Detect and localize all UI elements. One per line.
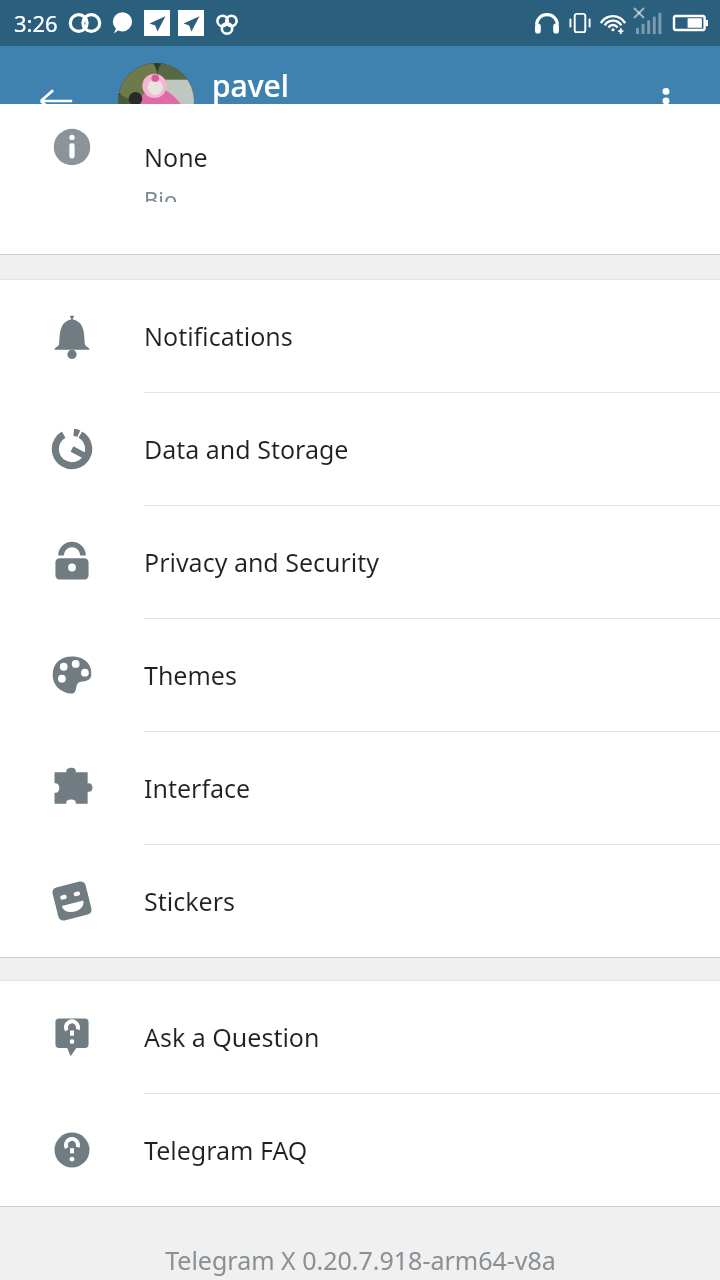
- button[interactable]: None: [0, 104, 720, 202]
- button[interactable]: pavel: [118, 63, 289, 139]
- button[interactable]: Stickers: [0, 845, 720, 957]
- staticText: Telegram FAQ: [144, 1133, 308, 1167]
- button[interactable]: Data and Storage: [0, 393, 720, 506]
- staticText: Data and Storage: [144, 432, 349, 466]
- staticText: None: [144, 140, 208, 174]
- button[interactable]: More options: [630, 65, 702, 137]
- button[interactable]: Interface: [0, 732, 720, 845]
- staticText: 3:26: [14, 8, 58, 38]
- staticText: Interface: [144, 771, 251, 805]
- staticText: Telegram X 0.20.7.918-arm64-v8a: [165, 1243, 556, 1277]
- button[interactable]: Notifications: [0, 280, 720, 393]
- staticText: pavel: [212, 65, 289, 106]
- button[interactable]: Themes: [0, 619, 720, 732]
- button[interactable]: Back: [20, 65, 92, 137]
- staticText: Stickers: [144, 884, 235, 918]
- staticText: Themes: [144, 658, 237, 692]
- staticText: Notifications: [144, 319, 293, 353]
- staticText: Ask a Question: [144, 1020, 320, 1054]
- staticText: Bio: [144, 184, 178, 202]
- button[interactable]: Telegram FAQ: [0, 1094, 720, 1206]
- button[interactable]: Privacy and Security: [0, 506, 720, 619]
- staticText: Privacy and Security: [144, 545, 380, 579]
- button[interactable]: Ask a Question: [0, 981, 720, 1094]
